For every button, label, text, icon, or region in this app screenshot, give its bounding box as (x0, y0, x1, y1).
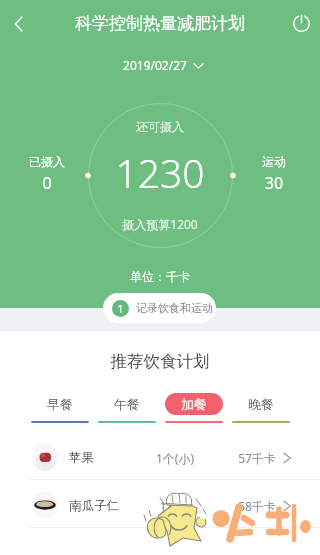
staticText: 午餐 (114, 396, 140, 412)
button[interactable]: 南瓜子仁 (0, 480, 320, 527)
staticText: 58千卡 (237, 498, 277, 514)
staticText: 还可摄入 (0, 119, 320, 134)
button[interactable]: 午餐 (93, 393, 160, 423)
button[interactable]: 2019/02/27 (123, 57, 204, 73)
staticText: 单位：千卡 (0, 269, 320, 284)
staticText: 苹果 (69, 450, 94, 466)
button[interactable]: 早餐 (26, 393, 93, 423)
staticText: 1 (117, 301, 124, 316)
staticText: 早餐 (47, 396, 73, 412)
staticText: 1小把 (145, 498, 205, 514)
button[interactable]: 晚餐 (227, 393, 294, 423)
staticText: 推荐饮食计划 (0, 351, 320, 372)
staticText: 1个(小) (145, 450, 205, 466)
staticText: 加餐 (181, 396, 207, 412)
staticText: 科学控制热量减肥计划 (0, 13, 320, 34)
staticText: 0 (17, 172, 77, 194)
button[interactable]: 苹果 (0, 432, 320, 479)
staticText: 1230 (0, 146, 320, 199)
staticText: 已摄入 (17, 154, 77, 169)
staticText: 南瓜子仁 (69, 498, 119, 514)
button[interactable]: Back (3, 8, 35, 40)
staticText: 运动 (244, 154, 304, 169)
staticText: 30 (244, 172, 304, 194)
button[interactable]: 1 (103, 293, 216, 323)
staticText: 57千卡 (237, 450, 277, 466)
button[interactable]: 加餐 (160, 393, 227, 423)
staticText: 晚餐 (248, 396, 274, 412)
staticText: 2019/02/27 (123, 57, 187, 73)
staticText: 记录饮食和运动 (136, 301, 213, 315)
button[interactable]: Power (285, 7, 317, 39)
staticText: 摄入预算1200 (0, 216, 320, 232)
